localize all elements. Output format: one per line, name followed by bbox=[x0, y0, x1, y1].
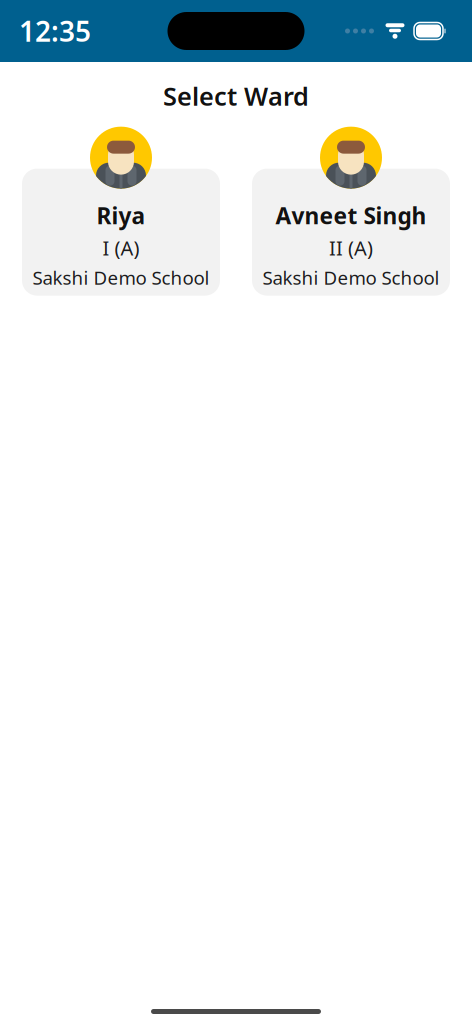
staticText: Sakshi Demo School bbox=[32, 265, 209, 290]
staticText: II (A) bbox=[329, 234, 373, 261]
staticText: Avneet Singh bbox=[275, 200, 426, 230]
staticText: Select Ward bbox=[163, 79, 309, 113]
staticText: Riya bbox=[96, 200, 145, 230]
staticText: I (A) bbox=[102, 234, 139, 261]
staticText: 12:35 bbox=[19, 12, 91, 50]
button[interactable]: Riya bbox=[22, 127, 220, 296]
staticText: Sakshi Demo School bbox=[262, 265, 439, 290]
button[interactable]: Avneet Singh bbox=[252, 127, 450, 296]
